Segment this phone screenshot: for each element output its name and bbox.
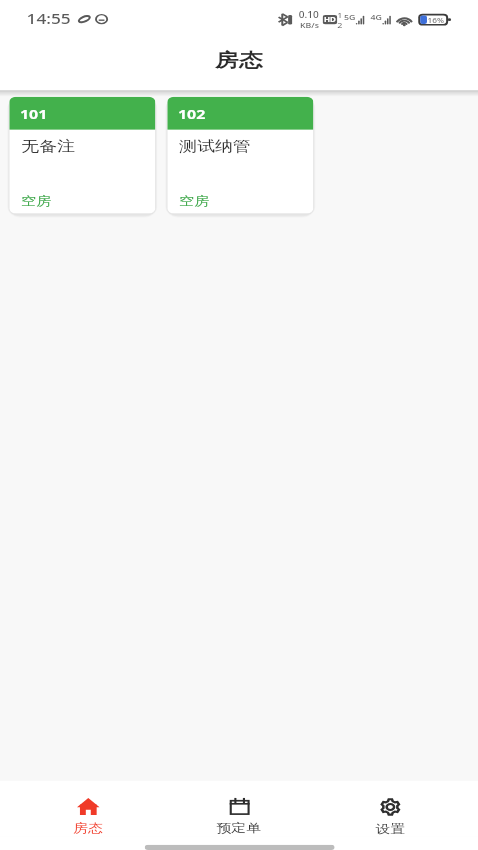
staticText: 102 (178, 105, 206, 122)
button[interactable]: 102 (167, 97, 313, 214)
staticText: 无备注 (21, 137, 76, 155)
staticText: 2 (337, 20, 343, 30)
staticText: 14:55 (27, 10, 72, 29)
button[interactable]: 预定单 (163, 781, 315, 836)
staticText: 房态 (73, 820, 103, 835)
button[interactable]: 101 (9, 97, 155, 214)
staticText: 1 (337, 11, 343, 20)
staticText: 空房 (179, 193, 210, 208)
staticText: HD (324, 16, 336, 24)
other: 设置 (380, 798, 401, 816)
button[interactable]: 房态 (12, 781, 163, 836)
other: 房态 (77, 798, 100, 815)
staticText: 房态 (215, 49, 263, 73)
staticText: 16% (427, 16, 445, 24)
staticText: 101 (20, 105, 48, 122)
staticText: 设置 (376, 821, 406, 836)
staticText: 预定单 (216, 820, 261, 835)
staticText: 5G (344, 13, 356, 22)
staticText: KB/s (300, 20, 320, 30)
staticText: 空房 (21, 193, 52, 208)
button[interactable]: 设置 (315, 781, 466, 836)
staticText: 4G (370, 13, 382, 22)
staticText: 0.10 (299, 10, 320, 20)
staticText: 测试纳管 (179, 137, 251, 155)
other: 预定单 (230, 798, 250, 815)
